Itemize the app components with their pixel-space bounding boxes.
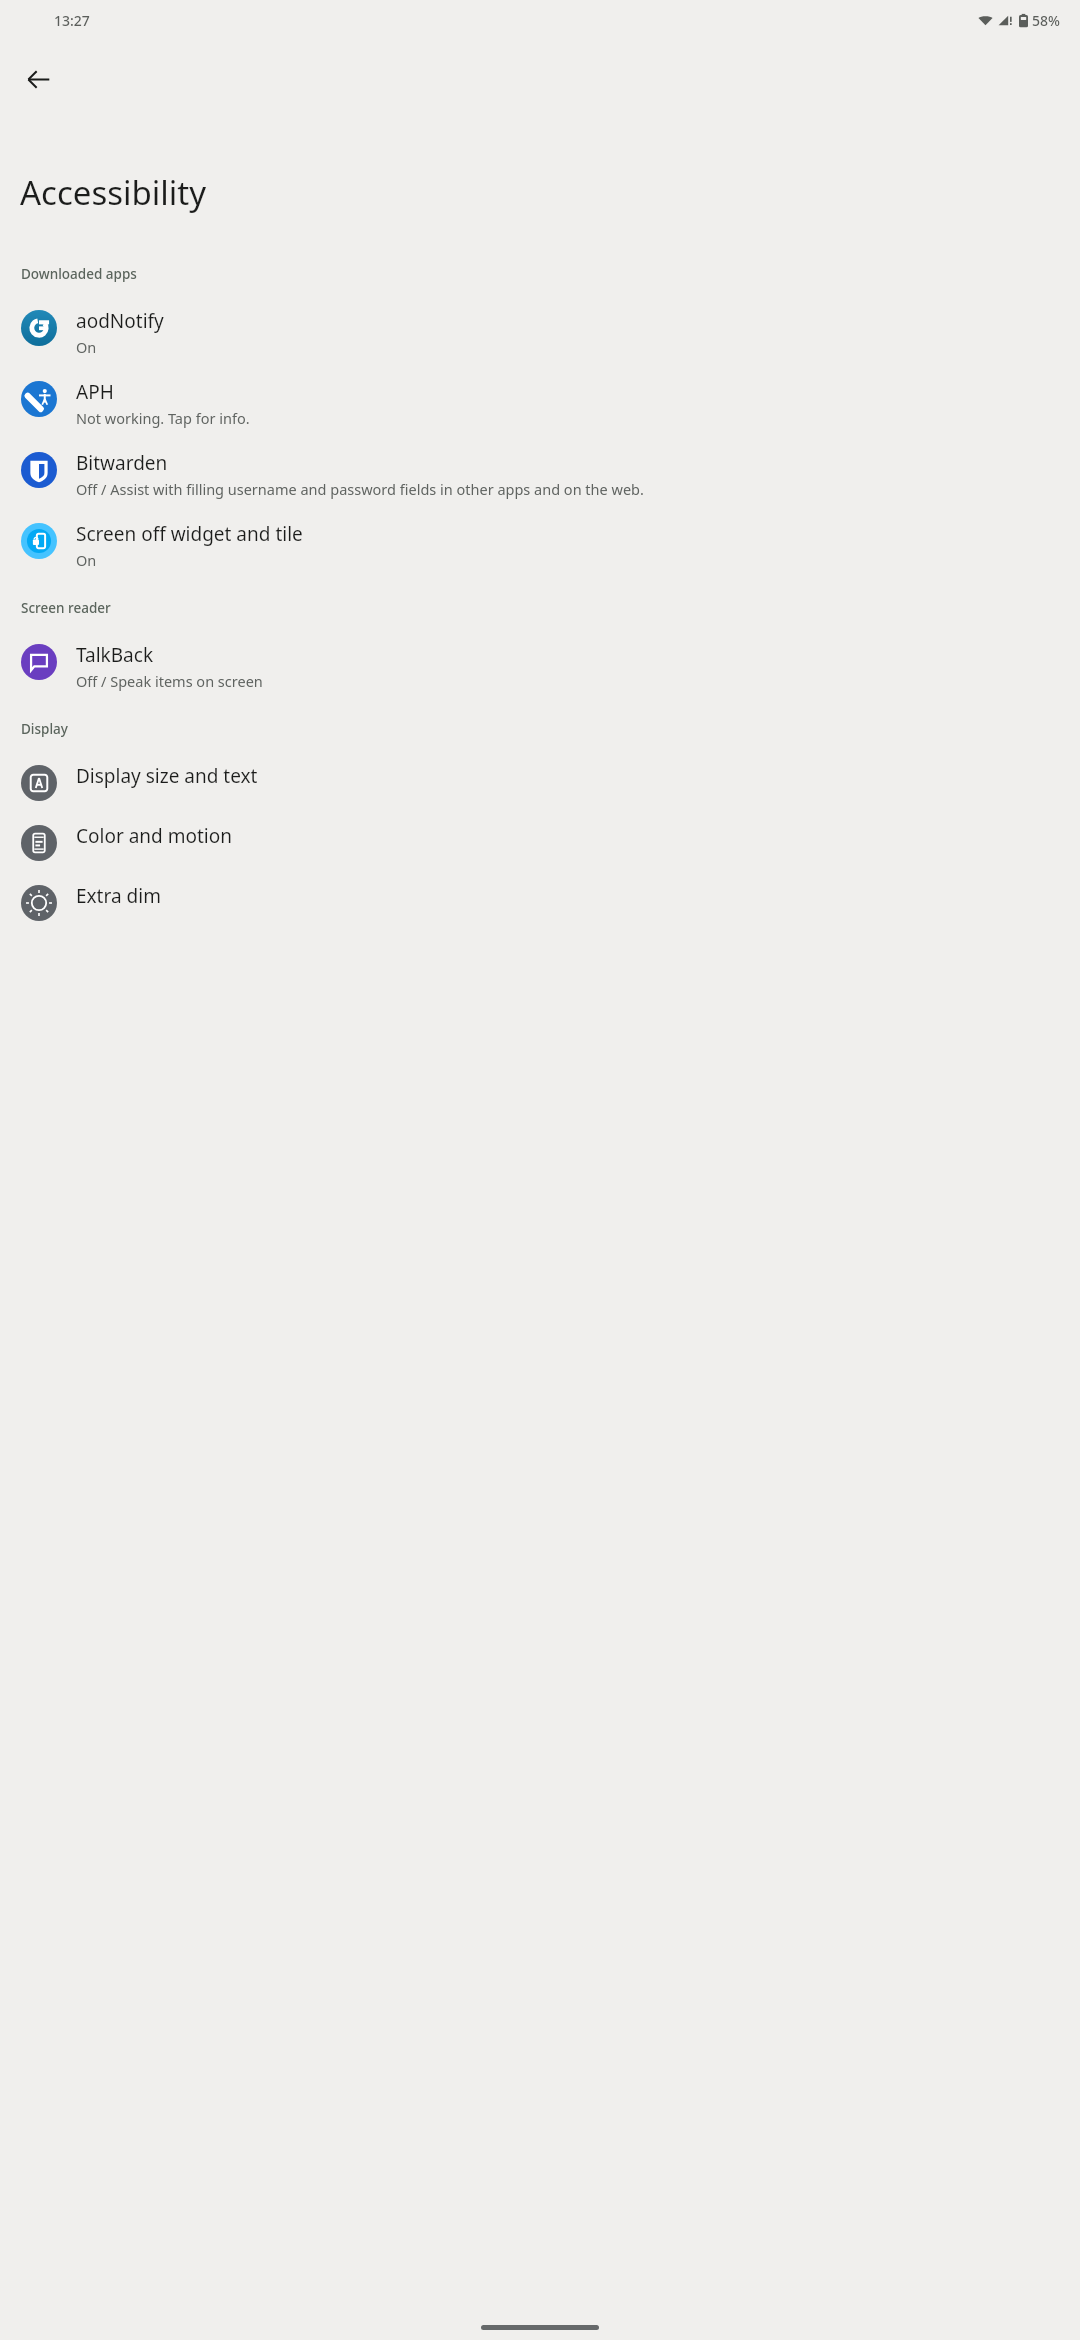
button[interactable]: APH	[0, 368, 1080, 439]
staticText: aodNotify	[76, 308, 164, 334]
staticText: APH	[76, 379, 114, 405]
staticText: Accessibility	[20, 170, 207, 215]
staticText: Display	[21, 720, 68, 738]
staticText: Screen off widget and tile	[76, 521, 303, 547]
staticText: Off / Assist with filling username and p…	[76, 479, 644, 499]
staticText: 58%	[1032, 11, 1060, 30]
staticText: TalkBack	[76, 642, 154, 668]
button[interactable]: Screen off widget and tile	[0, 510, 1080, 581]
staticText: Display size and text	[76, 763, 258, 789]
button[interactable]: TalkBack	[0, 631, 1080, 702]
staticText: 13:27	[54, 11, 90, 30]
button[interactable]: aodNotify	[0, 297, 1080, 368]
button[interactable]: Bitwarden	[0, 439, 1080, 510]
button[interactable]: Extra dim	[0, 872, 1080, 932]
staticText: On	[76, 550, 97, 570]
staticText: Screen reader	[21, 599, 111, 617]
staticText: Color and motion	[76, 823, 232, 849]
button[interactable]: Color and motion	[0, 812, 1080, 872]
staticText: Not working. Tap for info.	[76, 408, 250, 428]
staticText: Extra dim	[76, 883, 161, 909]
staticText: On	[76, 337, 97, 357]
staticText: Downloaded apps	[21, 265, 137, 283]
staticText: Bitwarden	[76, 450, 168, 476]
button[interactable]: Display size and text	[0, 752, 1080, 812]
button[interactable]: Back	[10, 51, 66, 107]
staticText: Off / Speak items on screen	[76, 671, 263, 691]
